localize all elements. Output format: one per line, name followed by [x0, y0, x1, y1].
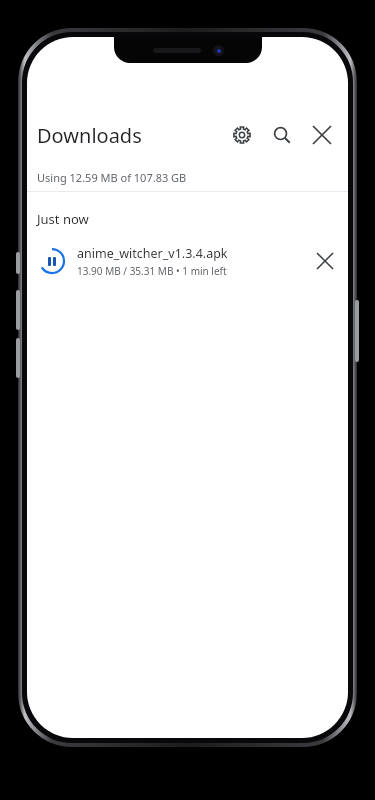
button[interactable]: Close: [302, 115, 342, 155]
button[interactable]: Cancel download: [308, 244, 342, 278]
button[interactable]: Search: [262, 115, 302, 155]
staticText: 13.90 MB / 35.31 MB • 1 min left: [77, 264, 227, 278]
staticText: anime_witcher_v1.3.4.apk: [77, 245, 228, 262]
staticText: Downloads: [37, 122, 222, 149]
staticText: Using 12.59 MB of 107.83 GB: [37, 170, 187, 185]
button[interactable]: Pause download: [37, 246, 67, 276]
staticText: Just now: [37, 210, 89, 228]
button[interactable]: Settings: [222, 115, 262, 155]
button[interactable]: Pause download: [27, 234, 348, 288]
